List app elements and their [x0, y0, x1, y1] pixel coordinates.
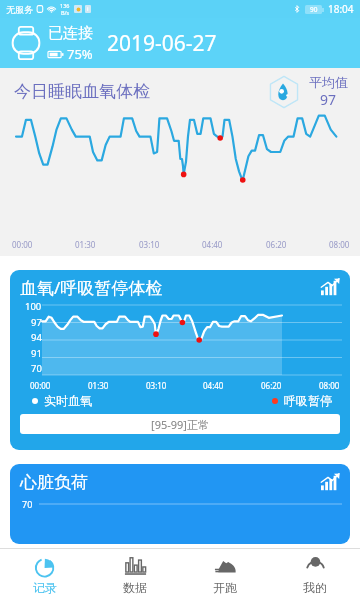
staticText: 75%: [67, 45, 93, 63]
staticText: 04:40: [202, 239, 223, 250]
other: Watch: [8, 25, 44, 61]
staticText: 100: [25, 300, 42, 313]
staticText: 记录: [33, 580, 57, 595]
staticText: 94: [31, 331, 42, 344]
staticText: 03:10: [139, 239, 160, 250]
staticText: 已连接: [48, 24, 93, 43]
staticText: 心脏负荷: [20, 472, 88, 493]
staticText: 70: [31, 362, 42, 375]
staticText: 2019-06-27: [107, 29, 217, 58]
button[interactable]: 数据: [90, 549, 180, 600]
staticText: 无服务: [6, 4, 33, 15]
staticText: 实时血氧: [44, 393, 92, 408]
staticText: 今日睡眠血氧体检: [14, 81, 150, 102]
button[interactable]: 今日睡眠血氧体检: [0, 68, 360, 256]
staticText: 91: [31, 347, 42, 360]
staticText: i: [87, 5, 89, 13]
staticText: 136: [60, 2, 70, 9]
staticText: B/s: [61, 9, 70, 16]
staticText: 开跑: [213, 580, 237, 595]
staticText: 00:00: [12, 239, 33, 250]
staticText: 08:00: [329, 239, 350, 250]
button[interactable]: 记录: [0, 549, 90, 600]
staticText: 06:20: [261, 380, 282, 391]
staticText: 08:00: [319, 380, 340, 391]
button[interactable]: 我的: [270, 549, 360, 600]
staticText: 04:40: [203, 380, 224, 391]
staticText: 70: [22, 498, 33, 510]
staticText: 平均值: [309, 74, 348, 90]
button[interactable]: [95-99]正常: [20, 414, 340, 434]
other: Chart: [320, 473, 340, 493]
staticText: 06:20: [266, 239, 287, 250]
button[interactable]: 血氧/呼吸暂停体检: [10, 270, 350, 450]
staticText: 00:00: [30, 380, 51, 391]
button[interactable]: 开跑: [180, 549, 270, 600]
staticText: 90: [310, 5, 318, 14]
staticText: 18:04: [328, 2, 354, 16]
staticText: 呼吸暂停: [284, 393, 332, 408]
staticText: 01:30: [88, 380, 109, 391]
button[interactable]: 心脏负荷: [10, 464, 350, 544]
staticText: 01:30: [75, 239, 96, 250]
staticText: 97: [320, 90, 337, 109]
staticText: 97: [31, 316, 42, 329]
staticText: [95-99]正常: [151, 417, 209, 432]
other: Chart: [320, 278, 340, 298]
staticText: 03:10: [146, 380, 167, 391]
staticText: 血氧/呼吸暂停体检: [20, 276, 163, 299]
staticText: 我的: [303, 580, 327, 595]
staticText: 数据: [123, 580, 147, 595]
other: Blood oxygen: [267, 75, 301, 109]
